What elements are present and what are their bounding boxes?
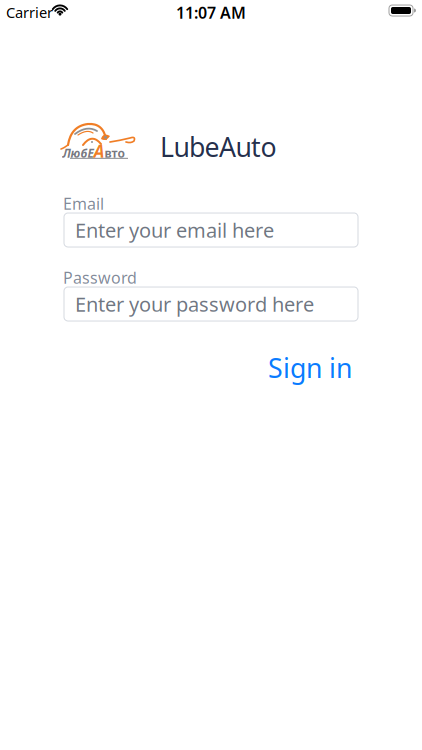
staticText: Carrier — [6, 2, 53, 22]
button[interactable]: Enter your password here — [64, 287, 358, 321]
staticText: Enter your password here — [75, 291, 314, 317]
staticText: LubeAuto — [160, 129, 276, 164]
button[interactable]: Sign in — [268, 350, 352, 385]
button[interactable]: Enter your email here — [64, 213, 358, 247]
staticText: Password — [63, 267, 137, 288]
staticText: вто — [104, 145, 124, 161]
staticText: ЛюбЕ — [62, 145, 93, 161]
staticText: Enter your email here — [75, 217, 274, 243]
staticText: Email — [63, 193, 104, 214]
staticText: Sign in — [268, 350, 352, 385]
staticText: 11:07 AM — [176, 2, 246, 23]
staticText: А — [93, 139, 104, 162]
